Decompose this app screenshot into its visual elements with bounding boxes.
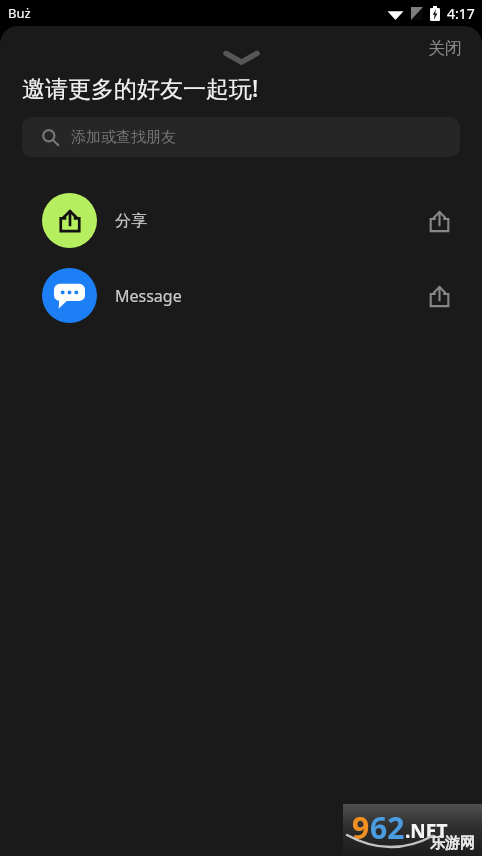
button[interactable]: Share <box>418 275 460 317</box>
staticText: 邀请更多的好友一起玩! <box>22 72 259 103</box>
button[interactable]: 分享 <box>0 183 482 258</box>
staticText: 乐游网 <box>430 834 475 853</box>
staticText: .NET <box>405 818 448 844</box>
staticText: Message <box>115 285 418 307</box>
button[interactable]: 关闭 <box>408 32 482 65</box>
button[interactable]: Collapse <box>214 44 268 70</box>
staticText: 关闭 <box>428 38 462 59</box>
button[interactable]: 添加或查找朋友 <box>22 117 460 157</box>
button[interactable]: Message <box>0 258 482 333</box>
staticText: 9 <box>352 807 370 848</box>
staticText: 4:17 <box>447 4 475 23</box>
staticText: 62 <box>370 807 405 848</box>
button[interactable]: Share <box>418 200 460 242</box>
staticText: Buż <box>8 4 31 22</box>
staticText: 分享 <box>115 211 418 231</box>
staticText: 添加或查找朋友 <box>71 128 176 147</box>
